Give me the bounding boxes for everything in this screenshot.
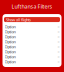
staticText: > <box>57 54 59 59</box>
staticText: Option <box>4 59 15 64</box>
staticText: > <box>57 34 59 39</box>
staticText: > <box>57 24 59 29</box>
staticText: Option <box>4 34 15 39</box>
staticText: > <box>57 59 59 64</box>
staticText: Option <box>4 24 15 29</box>
staticText: Option <box>4 49 15 54</box>
staticText: > <box>57 49 59 54</box>
staticText: Show all flights <box>6 17 31 22</box>
staticText: > <box>57 29 59 34</box>
staticText: > <box>57 39 59 44</box>
staticText: > <box>57 44 59 49</box>
staticText: Lufthansa Filters <box>11 3 52 10</box>
staticText: Option <box>4 39 15 44</box>
staticText: Option <box>4 44 15 49</box>
staticText: Option <box>4 54 15 59</box>
staticText: Option <box>4 29 15 34</box>
